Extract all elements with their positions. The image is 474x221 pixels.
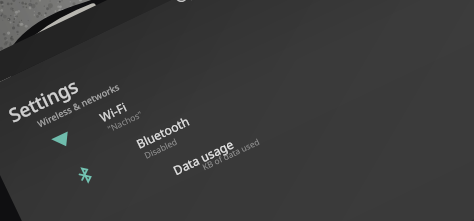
button[interactable]: Android Settings screen on a phone bbox=[0, 0, 474, 221]
